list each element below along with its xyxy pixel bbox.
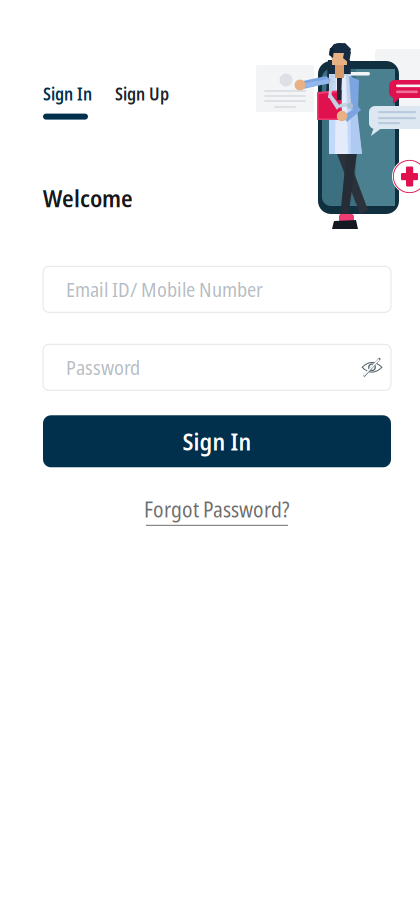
staticText: Forgot Password? [144,495,290,524]
button[interactable]: Forgot Password? [43,497,391,523]
staticText: Email ID/ Mobile Number [66,276,263,303]
staticText: Welcome [43,182,133,214]
button[interactable]: Show password [355,352,389,382]
staticText: Sign In [43,82,92,106]
button[interactable]: Sign In [43,82,92,120]
staticText: Password [66,354,140,381]
button[interactable]: Sign Up [115,82,169,120]
button[interactable]: Sign In [43,415,391,467]
staticText: Sign Up [115,82,169,106]
staticText: Sign In [182,425,251,458]
